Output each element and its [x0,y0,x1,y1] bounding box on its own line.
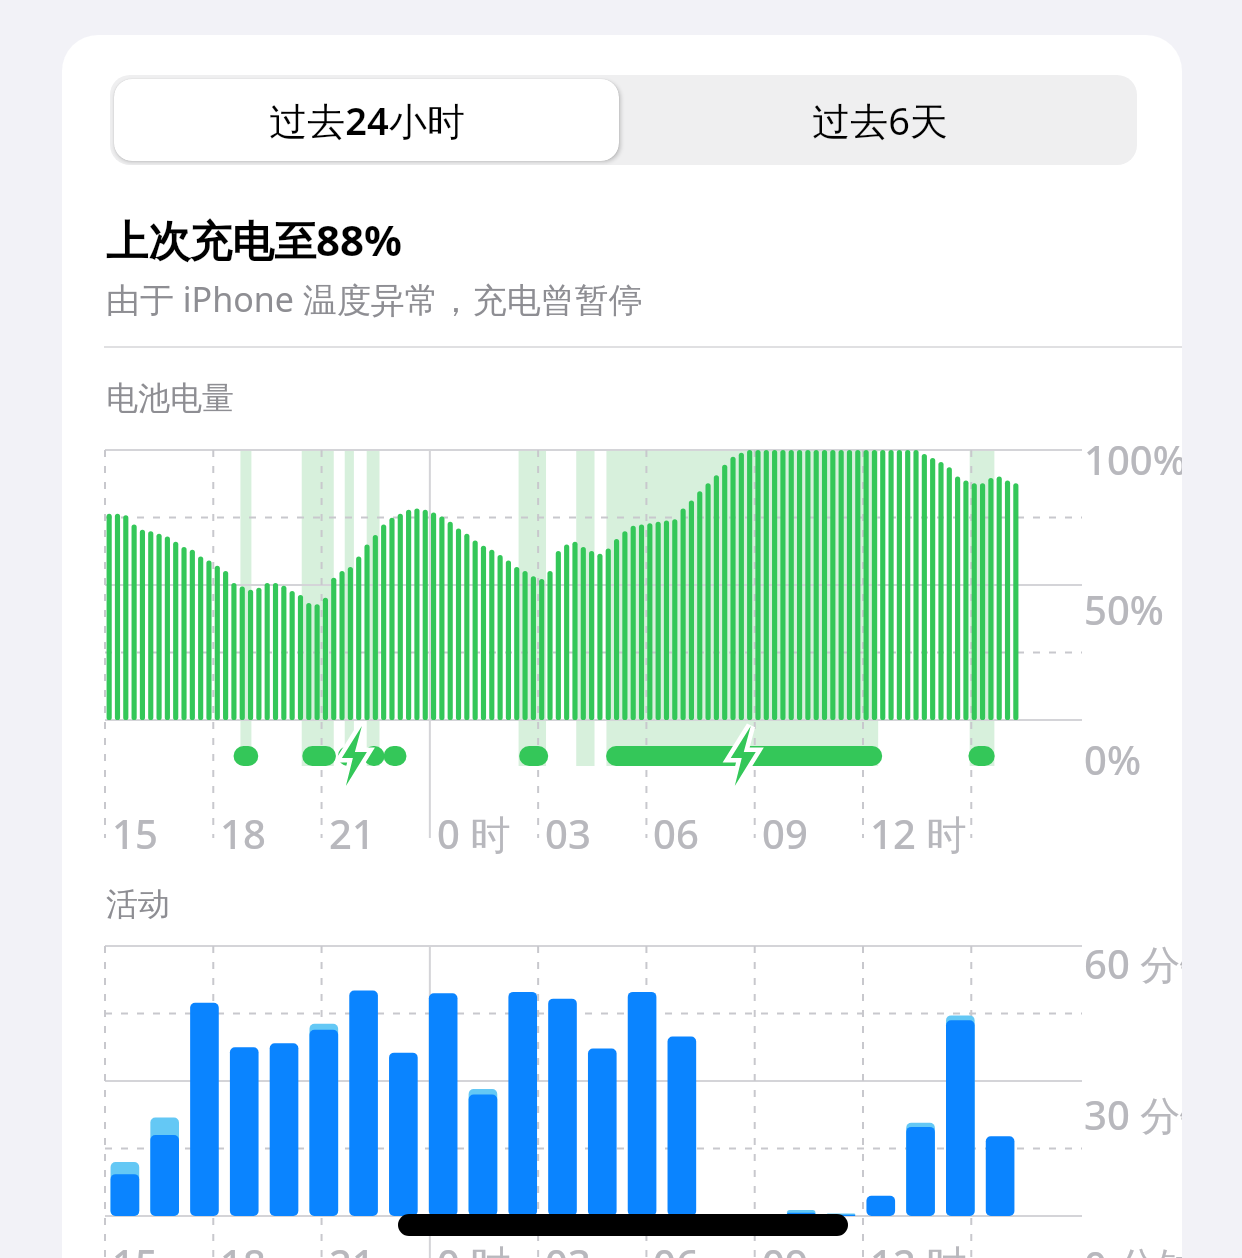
staticText: 50% [1084,582,1164,636]
staticText: 电池电量 [106,378,234,418]
staticText: 0% [1084,732,1141,786]
staticText: 09 [762,1236,808,1258]
staticText: 06 [653,1236,699,1258]
staticText: 0 时 [437,1236,511,1258]
staticText: 21 [329,1236,375,1258]
staticText: 过去24小时 [269,94,465,146]
staticText: 09 [762,806,808,860]
staticText: 18 [220,1236,266,1258]
staticText: 12 时 [870,1236,967,1258]
staticText: 03 [545,1236,591,1258]
staticText: 18 [220,806,266,860]
staticText: 30 分钟 [1084,1087,1182,1142]
staticText: 由于 iPhone 温度异常，充电曾暂停 [106,276,643,322]
staticText: 活动 [106,884,170,924]
staticText: 上次充电至88% [106,211,402,268]
staticText: 60 分钟 [1084,936,1182,991]
staticText: 0 时 [437,806,511,861]
staticText: 12 时 [870,806,967,861]
button[interactable]: 过去6天 [623,75,1137,165]
staticText: 15 [112,806,158,860]
staticText: 15 [112,1236,158,1258]
staticText: 06 [653,806,699,860]
button[interactable]: 过去24小时 [114,79,619,161]
staticText: 03 [545,806,591,860]
staticText: 0 分钟 [1084,1238,1182,1258]
staticText: 过去6天 [812,94,948,146]
staticText: 100% [1084,432,1182,486]
staticText: 21 [329,806,375,860]
